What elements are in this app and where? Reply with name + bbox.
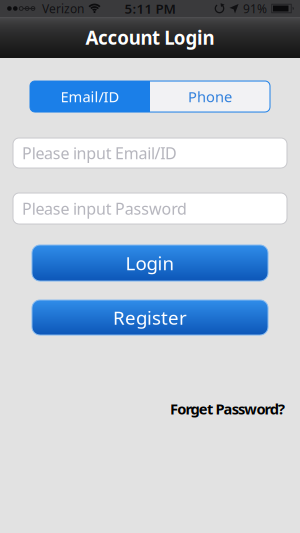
staticText: Please input Email/ID: [22, 142, 177, 164]
staticText: Verizon: [42, 0, 84, 16]
button[interactable]: Login: [32, 245, 268, 281]
staticText: Account Login: [85, 25, 215, 50]
button[interactable]: Register: [32, 300, 268, 335]
staticText: Login: [125, 251, 174, 275]
button[interactable]: Email/ID: [30, 81, 150, 112]
button[interactable]: Forget Password?: [170, 399, 285, 418]
staticText: Forget Password?: [170, 399, 285, 418]
button[interactable]: Email/ID input: [13, 138, 287, 168]
staticText: Register: [113, 305, 187, 330]
staticText: Phone: [188, 87, 232, 106]
staticText: Email/ID: [60, 87, 119, 106]
button[interactable]: Phone: [150, 81, 270, 112]
staticText: 5:11 PM: [124, 0, 175, 17]
staticText: 91%: [243, 0, 267, 16]
staticText: Please input Password: [22, 198, 187, 219]
button[interactable]: Password input: [13, 193, 287, 224]
